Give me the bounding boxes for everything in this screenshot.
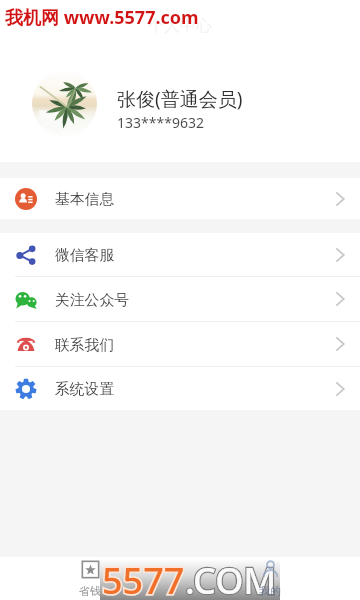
button[interactable]: 微信客服 [0,233,360,276]
other: 省钱 [81,560,100,579]
staticText: 基本信息 [55,190,115,209]
staticText: 张俊(普通会员) [117,86,243,112]
button[interactable]: 联系我们 [0,322,360,366]
staticText: 133****9632 [117,113,204,132]
button[interactable]: 省钱 [0,557,180,600]
other: 我的 [261,560,280,579]
staticText: 个人中心 [148,16,212,36]
staticText: .COM [185,556,277,597]
staticText: 省钱 [79,584,101,598]
staticText: 我的 [259,584,281,598]
other: 我的 [261,560,280,579]
staticText: 我的 [259,584,281,598]
staticText: 我机网 www.5577.com [5,5,199,30]
staticText: 微信客服 [55,246,115,265]
button[interactable]: 系统设置 [0,367,360,410]
staticText: .COM [185,556,277,597]
button[interactable]: 基本信息 [0,178,360,219]
staticText: 联系我们 [55,336,115,355]
staticText: 5577 [102,556,185,597]
button[interactable]: 关注公众号 [0,277,360,321]
button[interactable]: 张俊(普通会员) [0,52,360,162]
staticText: 系统设置 [55,380,115,399]
staticText: 5577 [102,556,185,597]
button[interactable]: 我的 [180,557,360,600]
staticText: 关注公众号 [55,291,129,310]
